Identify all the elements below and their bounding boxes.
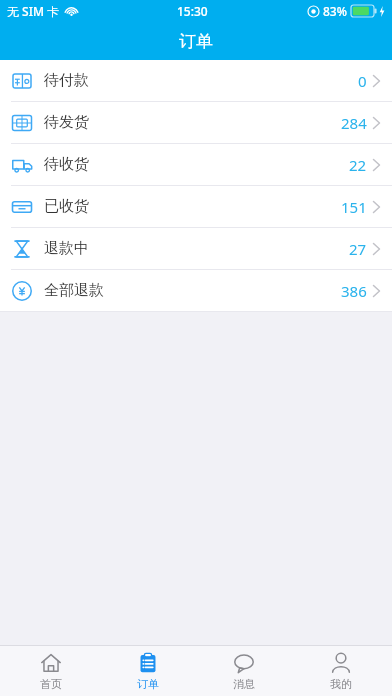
button[interactable]: 消息 [199, 646, 289, 696]
staticText: 22 [349, 155, 367, 175]
staticText: 首页 [40, 677, 62, 691]
staticText: 15:30 [177, 3, 208, 19]
button[interactable]: 首页 [6, 646, 96, 696]
staticText: 386 [341, 281, 367, 301]
staticText: 待发货 [44, 113, 89, 132]
staticText: 待收货 [44, 155, 89, 174]
staticText: 已收货 [44, 197, 89, 216]
staticText: 我的 [330, 677, 352, 691]
staticText: 151 [341, 197, 367, 217]
staticText: 284 [341, 113, 367, 133]
button[interactable]: 全部退款 [0, 270, 392, 312]
button[interactable]: 订单 [103, 646, 193, 696]
staticText: 无 SIM 卡 [7, 3, 60, 19]
button[interactable]: 待收货 [0, 144, 392, 186]
staticText: 退款中 [44, 239, 89, 258]
button[interactable]: 已收货 [0, 186, 392, 228]
staticText: 全部退款 [44, 281, 104, 300]
staticText: 0 [358, 71, 367, 91]
button[interactable]: 我的 [296, 646, 386, 696]
button[interactable]: 退款中 [0, 228, 392, 270]
staticText: 83% [323, 3, 347, 19]
button[interactable]: 待发货 [0, 102, 392, 144]
staticText: 消息 [233, 677, 255, 691]
staticText: 订单 [137, 677, 159, 691]
button[interactable]: 待付款 [0, 60, 392, 102]
staticText: 待付款 [44, 71, 89, 90]
staticText: 订单 [179, 31, 213, 52]
staticText: 27 [349, 239, 367, 259]
